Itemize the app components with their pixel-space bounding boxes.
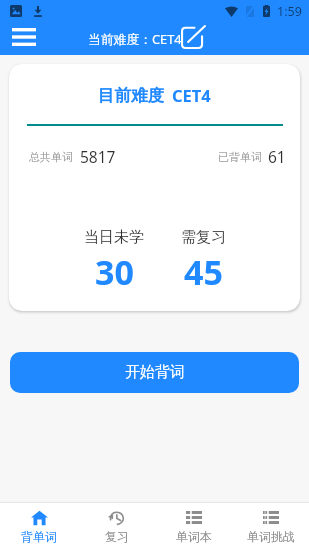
staticText: 45 bbox=[184, 249, 223, 295]
staticText: 5817 bbox=[80, 146, 116, 167]
staticText: 总共单词 bbox=[29, 150, 73, 164]
staticText: 开始背词 bbox=[125, 363, 185, 382]
staticText: 目前难度 bbox=[98, 85, 164, 106]
button[interactable]: 开始背词 bbox=[10, 352, 299, 393]
staticText: 30 bbox=[95, 249, 134, 295]
staticText: CET4 bbox=[172, 84, 211, 106]
staticText: 当前难度：CET4 bbox=[88, 30, 182, 47]
staticText: 单词挑战 bbox=[247, 529, 295, 544]
button[interactable]: 单词本 bbox=[155, 503, 232, 550]
staticText: 1:59 bbox=[277, 3, 302, 20]
button[interactable]: 背单词 bbox=[0, 503, 78, 550]
staticText: 背单词 bbox=[21, 529, 57, 544]
staticText: 需复习 bbox=[181, 228, 226, 247]
staticText: 当日未学 bbox=[84, 228, 144, 247]
button[interactable]: 单词挑战 bbox=[232, 503, 309, 550]
staticText: 已背单词 bbox=[218, 150, 262, 164]
staticText: 单词本 bbox=[176, 529, 212, 544]
staticText: 复习 bbox=[105, 529, 129, 544]
button[interactable]: Menu bbox=[6, 20, 42, 53]
button[interactable]: Edit difficulty bbox=[181, 24, 206, 49]
staticText: 61 bbox=[268, 146, 286, 167]
button[interactable]: 复习 bbox=[78, 503, 155, 550]
